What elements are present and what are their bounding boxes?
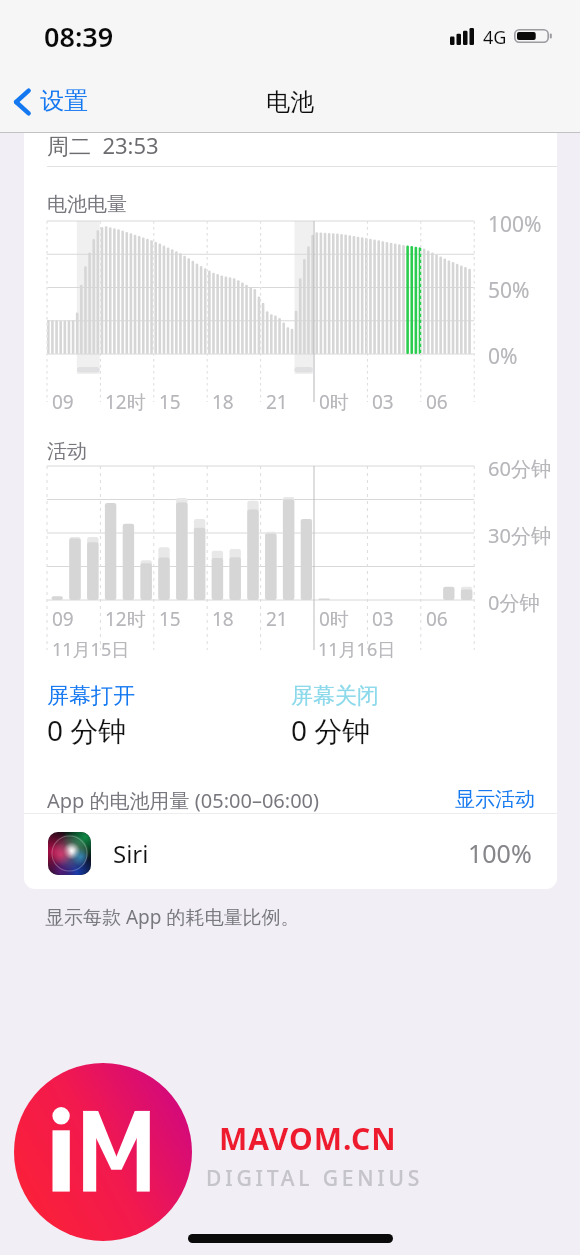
staticText: 12时 [105,389,146,415]
button[interactable]: Siri [24,814,557,889]
staticText: 0 分钟 [291,711,371,749]
staticText: 21 [266,389,288,415]
staticText: 30分钟 [488,522,551,549]
staticText: 0时 [319,606,349,632]
staticText: 11月15日 [52,637,130,662]
staticText: App 的电池用量 (05:00–06:00) [47,787,320,814]
staticText: 0 分钟 [47,711,127,749]
staticText: 屏幕打开 [47,682,135,710]
button[interactable]: App 的电池用量 (05:00–06:00) [47,787,320,814]
button[interactable]: 显示活动 [455,787,535,812]
staticText: 11月16日 [318,637,396,662]
staticText: 显示每款 App 的耗电量比例。 [45,904,300,930]
staticText: 活动 [47,439,87,464]
button[interactable]: 设置 [5,80,96,124]
staticText: 15 [159,606,181,632]
staticText: 06 [426,389,448,415]
staticText: 电池 [266,87,314,117]
staticText: 显示活动 [455,787,535,812]
staticText: 03 [372,389,394,415]
staticText: 4G [483,25,507,50]
staticText: Siri [113,837,149,870]
staticText: DIGITAL GENIUS [206,1164,424,1193]
staticText: 03 [372,606,394,632]
staticText: 0% [488,342,518,371]
staticText: 09 [52,389,74,415]
staticText: 18 [212,389,234,415]
staticText: 100% [468,836,532,870]
staticText: 设置 [40,86,88,116]
staticText: 50% [488,276,530,305]
staticText: 15 [159,389,181,415]
staticText: 18 [212,606,234,632]
staticText: 100% [488,210,542,239]
staticText: 08:39 [44,18,114,55]
staticText: 屏幕关闭 [291,682,379,710]
staticText: 12时 [105,606,146,632]
staticText: 60分钟 [488,455,551,482]
staticText: 电池电量 [47,192,127,217]
staticText: 06 [426,606,448,632]
staticText: 0分钟 [488,589,540,616]
staticText: 09 [52,606,74,632]
staticText: MAVOM.CN [219,1118,397,1159]
staticText: 21 [266,606,288,632]
staticText: 0时 [319,389,349,415]
staticText: 周二 23:53 [47,130,159,160]
